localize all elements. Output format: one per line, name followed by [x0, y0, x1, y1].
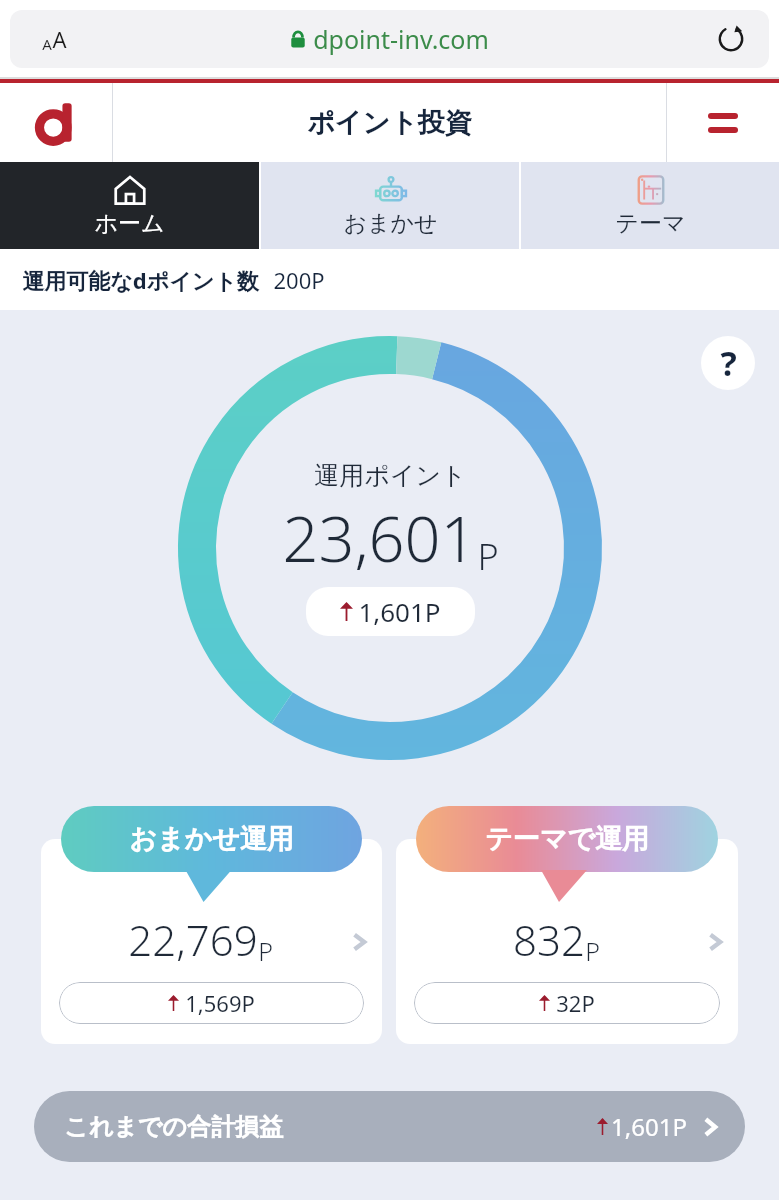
button[interactable]: これまでの合計損益 — [34, 1091, 745, 1162]
staticText: おまかせ運用 — [129, 822, 294, 856]
button[interactable]: Text size — [32, 17, 76, 61]
staticText: 運用ポイント — [314, 460, 467, 491]
staticText: おまかせ — [343, 209, 438, 238]
button[interactable]: テーマ — [521, 162, 779, 249]
staticText: 32P — [556, 988, 595, 1018]
staticText: 200P — [273, 265, 325, 295]
staticText: dpoint-inv.com — [313, 22, 489, 56]
button[interactable]: 832 — [396, 839, 738, 1044]
staticText: ホーム — [94, 209, 165, 238]
button[interactable]: 22,769 — [41, 839, 382, 1044]
staticText: A — [52, 24, 67, 54]
staticText: P — [585, 934, 600, 968]
staticText: A — [42, 34, 52, 54]
staticText: 23,601 — [282, 495, 477, 581]
staticText: P — [477, 532, 499, 581]
button[interactable]: ホーム — [0, 162, 259, 249]
staticText: 1,601P — [358, 594, 441, 629]
staticText: ポイント投資 — [307, 106, 472, 140]
staticText: 832 — [513, 911, 585, 968]
staticText: P — [258, 934, 273, 968]
button[interactable]: おまかせ — [261, 162, 519, 249]
staticText: これまでの合計損益 — [64, 1112, 283, 1142]
staticText: テーマ — [615, 209, 686, 238]
staticText: 1,569P — [185, 988, 255, 1018]
staticText: ? — [720, 340, 737, 386]
button[interactable]: docomo home — [0, 83, 112, 162]
button[interactable]: Reload — [711, 19, 751, 59]
staticText: テーマで運用 — [485, 822, 649, 856]
button[interactable]: Menu — [667, 83, 779, 162]
button[interactable]: Help — [701, 336, 755, 390]
staticText: 22,769 — [128, 911, 258, 968]
staticText: 運用可能なdポイント数 — [22, 265, 259, 295]
staticText: 1,601P — [611, 1110, 687, 1143]
